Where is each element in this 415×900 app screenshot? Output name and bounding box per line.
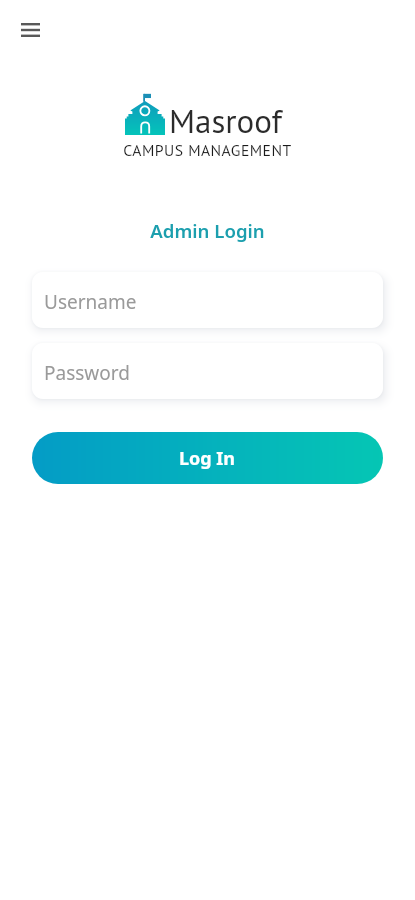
staticText: Password [44, 360, 130, 386]
button[interactable]: Username [32, 272, 383, 328]
staticText: Log In [179, 446, 236, 471]
staticText: Admin Login [0, 218, 415, 243]
button[interactable]: Password [32, 343, 383, 399]
staticText: Username [44, 289, 137, 315]
staticText: Masroof [169, 99, 283, 142]
button[interactable]: Log In [32, 432, 383, 484]
button[interactable]: Menu [12, 14, 48, 46]
staticText: CAMPUS MANAGEMENT [0, 140, 415, 160]
